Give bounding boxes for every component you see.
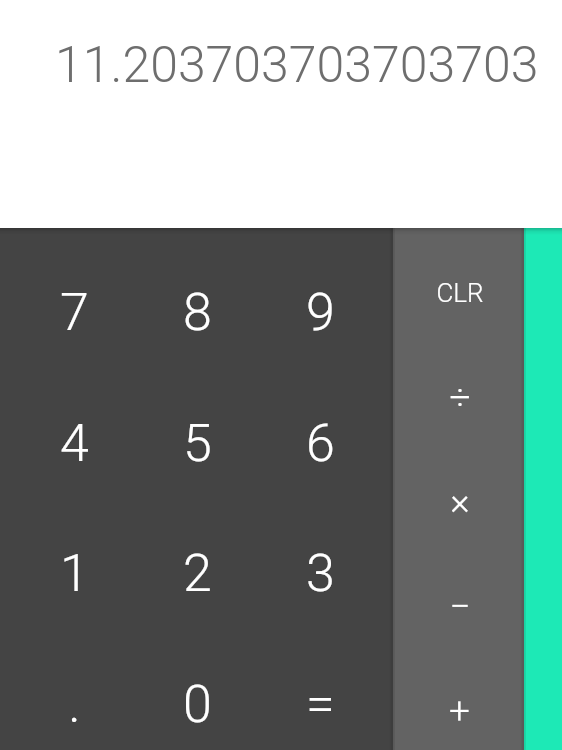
button[interactable]: 3 bbox=[262, 489, 393, 620]
staticText: 3 bbox=[306, 543, 335, 604]
staticText: 2 bbox=[183, 543, 212, 604]
button[interactable]: Add bbox=[393, 646, 524, 750]
staticText: 0 bbox=[183, 674, 212, 735]
staticText: 7 bbox=[60, 282, 89, 343]
button[interactable]: 4 bbox=[0, 359, 131, 490]
button[interactable]: 9 bbox=[262, 228, 393, 359]
button[interactable]: 5 bbox=[131, 359, 262, 490]
staticText: 5 bbox=[183, 413, 212, 474]
button[interactable]: Equals bbox=[524, 228, 562, 750]
button[interactable]: 6 bbox=[262, 359, 393, 490]
button[interactable]: Divide bbox=[393, 332, 524, 436]
staticText: 6 bbox=[306, 413, 335, 474]
button[interactable]: 7 bbox=[0, 228, 131, 359]
button[interactable]: 1 bbox=[0, 489, 131, 620]
staticText: 8 bbox=[183, 282, 212, 343]
button[interactable]: Clear bbox=[393, 228, 524, 332]
staticText: 9 bbox=[306, 282, 335, 343]
staticText: 1 bbox=[60, 543, 89, 604]
staticText: . bbox=[68, 674, 81, 735]
button[interactable]: Subtract bbox=[393, 541, 524, 645]
button[interactable]: Multiply bbox=[393, 437, 524, 541]
button[interactable]: 2 bbox=[131, 489, 262, 620]
staticText: − bbox=[449, 585, 471, 628]
staticText: 4 bbox=[60, 413, 89, 474]
staticText: CLR bbox=[436, 278, 484, 308]
button[interactable]: = bbox=[262, 620, 393, 750]
button[interactable]: 0 bbox=[131, 620, 262, 750]
staticText: 11.203703703703703 bbox=[55, 36, 539, 95]
button[interactable]: 8 bbox=[131, 228, 262, 359]
button[interactable]: . bbox=[0, 620, 131, 750]
staticText: ÷ bbox=[449, 376, 471, 419]
staticText: × bbox=[450, 480, 470, 523]
staticText: = bbox=[306, 674, 335, 735]
staticText: + bbox=[449, 689, 470, 732]
